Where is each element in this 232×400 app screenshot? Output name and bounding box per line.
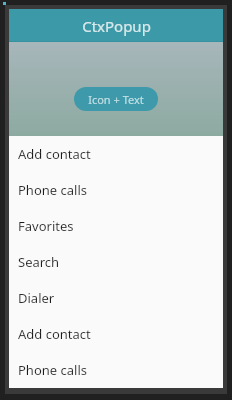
button[interactable]: Dialer	[9, 280, 223, 316]
button[interactable]: Icon + Text	[74, 87, 158, 111]
staticText: CtxPopup	[82, 16, 151, 36]
button[interactable]: Favorites	[9, 208, 223, 244]
staticText: Phone calls	[18, 181, 87, 199]
button[interactable]: Search	[9, 244, 223, 280]
staticText: Search	[18, 253, 60, 271]
staticText: Add contact	[18, 145, 91, 163]
button[interactable]: Phone calls	[9, 352, 223, 388]
button[interactable]: Add contact	[9, 136, 223, 172]
staticText: Phone calls	[18, 361, 87, 379]
staticText: Dialer	[18, 289, 55, 307]
staticText: Add contact	[18, 325, 91, 343]
button[interactable]: Phone calls	[9, 172, 223, 208]
staticText: Icon + Text	[88, 92, 144, 107]
button[interactable]: Add contact	[9, 316, 223, 352]
staticText: Favorites	[18, 217, 74, 235]
